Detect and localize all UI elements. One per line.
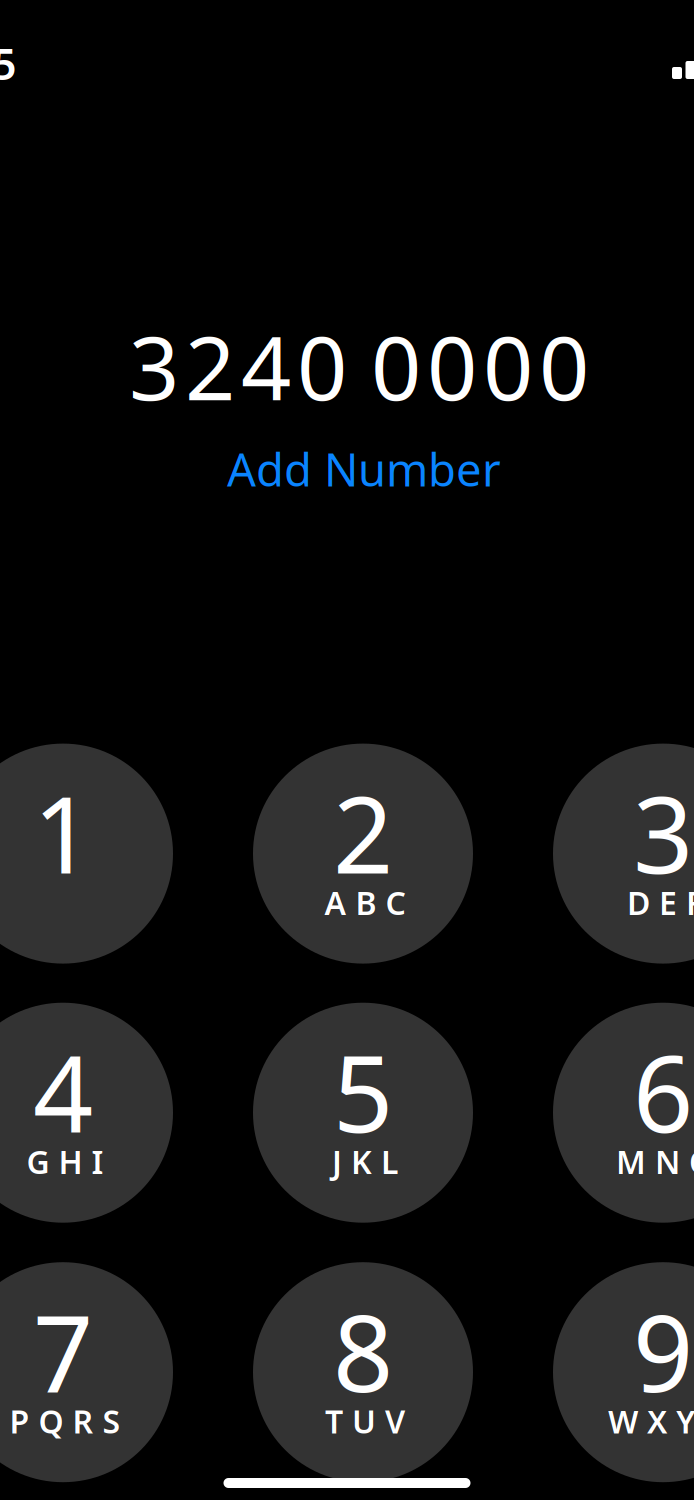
button[interactable]: 3 [553, 744, 694, 964]
staticText: GHI [26, 1140, 103, 1183]
staticText: PQRS [9, 1400, 120, 1442]
button[interactable]: 4 [0, 1003, 173, 1223]
button[interactable]: 7 [0, 1262, 173, 1482]
staticText: 3 [633, 763, 693, 903]
staticText: DEF [627, 881, 694, 924]
staticText: ABC [324, 881, 405, 924]
staticText: 4 [33, 1022, 93, 1162]
button[interactable]: 2 [253, 744, 473, 964]
staticText: JKL [332, 1140, 398, 1183]
staticText: 2 [333, 763, 393, 903]
staticText: WXYZ [608, 1400, 694, 1442]
staticText: 3240 [129, 308, 347, 424]
button[interactable]: 8 [253, 1262, 473, 1482]
staticText: 7 [33, 1281, 93, 1421]
staticText: 1 [33, 763, 93, 903]
staticText: 9:45 [0, 34, 16, 92]
button[interactable]: 6 [553, 1003, 694, 1223]
staticText: Add Number [227, 439, 501, 499]
staticText: TUV [325, 1400, 405, 1442]
button[interactable]: 1 [0, 744, 173, 964]
staticText: 6 [633, 1022, 693, 1162]
staticText: 9 [633, 1281, 693, 1421]
staticText: MNO [616, 1140, 694, 1183]
button[interactable]: Add Number [227, 439, 501, 499]
button[interactable]: 5 [253, 1003, 473, 1223]
staticText: 0000 [371, 308, 589, 424]
button[interactable]: 9 [553, 1262, 694, 1482]
staticText: 8 [333, 1281, 393, 1421]
staticText: 5 [333, 1022, 393, 1162]
